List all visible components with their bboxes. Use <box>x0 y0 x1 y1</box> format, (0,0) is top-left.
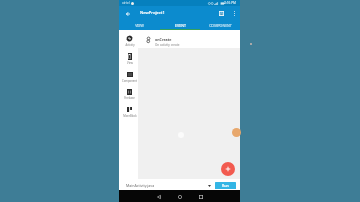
staticText: On activity create <box>155 43 180 47</box>
button[interactable]: Run <box>215 182 236 189</box>
button[interactable]: onCreate <box>138 30 240 48</box>
button[interactable]: View <box>120 50 139 67</box>
staticText: MainActivity.java <box>126 183 155 188</box>
button[interactable]: MainActivity.java <box>124 181 211 189</box>
button[interactable]: VIEW <box>119 20 160 30</box>
staticText: Run <box>222 183 229 188</box>
button[interactable]: COMPONENT <box>200 20 240 30</box>
staticText: View <box>127 61 133 65</box>
button[interactable]: Firebase <box>120 85 139 102</box>
staticText: COMPONENT <box>209 23 232 28</box>
button[interactable]: Event options <box>247 40 254 47</box>
button[interactable]: Back <box>153 191 164 202</box>
button[interactable]: MoreBlock <box>120 103 139 120</box>
staticText: MoreBlock <box>123 114 137 118</box>
staticText: Component <box>122 79 137 83</box>
button[interactable]: Navigate up <box>122 8 133 19</box>
button[interactable]: Home <box>174 191 185 202</box>
button[interactable]: Recent apps <box>195 191 206 202</box>
button[interactable]: Component <box>120 68 139 85</box>
staticText: 3:16 PM <box>224 1 236 5</box>
button[interactable]: Activity <box>120 32 139 49</box>
staticText: airtel <box>122 1 130 5</box>
button[interactable]: EVENT <box>160 20 200 30</box>
button[interactable]: Save <box>216 8 226 18</box>
staticText: NewProject1 <box>140 10 165 16</box>
staticText: Firebase <box>124 96 135 100</box>
button[interactable]: Add event <box>221 162 235 176</box>
staticText: EVENT <box>175 23 186 28</box>
staticText: Activity <box>125 43 135 47</box>
staticText: onCreate <box>155 37 172 42</box>
button[interactable]: More options <box>229 8 239 18</box>
staticText: VIEW <box>135 23 144 28</box>
